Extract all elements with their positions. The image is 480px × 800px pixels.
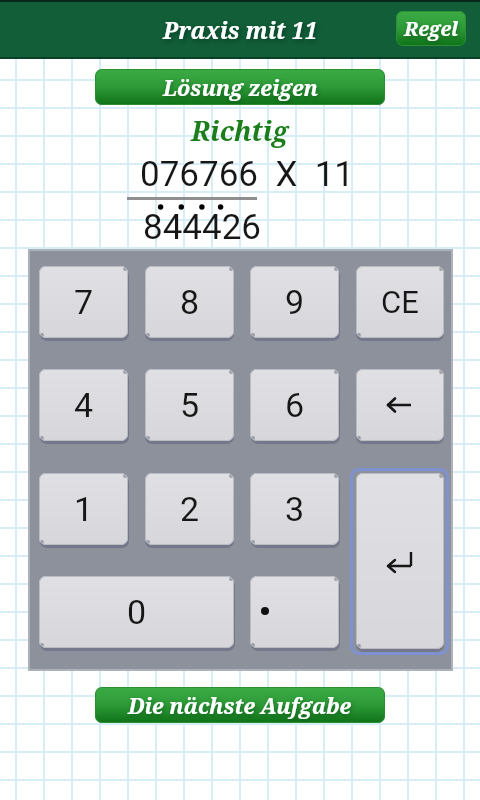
button[interactable]: Regel xyxy=(396,11,466,46)
button[interactable] xyxy=(356,473,444,649)
staticText: 076766 X 11 xyxy=(140,154,355,195)
staticText: 3 xyxy=(285,489,305,529)
staticText: Regel xyxy=(404,15,459,42)
button[interactable]: 1 xyxy=(39,473,128,545)
button[interactable]: 9 xyxy=(250,266,339,338)
staticText: 8 xyxy=(180,282,200,322)
button[interactable] xyxy=(250,576,339,648)
staticText: 9 xyxy=(285,282,305,322)
staticText: Praxis mit 11 xyxy=(163,14,318,45)
staticText: 4 xyxy=(74,385,94,425)
staticText: 0 xyxy=(127,592,147,632)
staticText: CE xyxy=(381,284,419,320)
staticText: 7 xyxy=(74,282,94,322)
staticText: Lösung zeigen xyxy=(163,73,318,102)
button[interactable]: 2 xyxy=(145,473,234,545)
button[interactable]: 0 xyxy=(39,576,234,648)
button[interactable]: 5 xyxy=(145,369,234,441)
button[interactable]: 3 xyxy=(250,473,339,545)
staticText: 1 xyxy=(74,489,94,529)
button[interactable]: 6 xyxy=(250,369,339,441)
button[interactable]: 7 xyxy=(39,266,128,338)
staticText: 2 xyxy=(180,489,200,529)
staticText: Die nächste Aufgabe xyxy=(128,691,352,720)
button[interactable]: Die nächste Aufgabe xyxy=(95,687,385,723)
button[interactable]: Lösung zeigen xyxy=(95,69,385,105)
staticText: 6 xyxy=(285,385,305,425)
button[interactable]: CE xyxy=(356,266,444,338)
staticText: 844426 xyxy=(143,207,262,248)
staticText: 5 xyxy=(180,385,200,425)
staticText: Richtig xyxy=(191,112,289,149)
button[interactable]: 4 xyxy=(39,369,128,441)
button[interactable]: 8 xyxy=(145,266,234,338)
button[interactable] xyxy=(356,369,444,441)
